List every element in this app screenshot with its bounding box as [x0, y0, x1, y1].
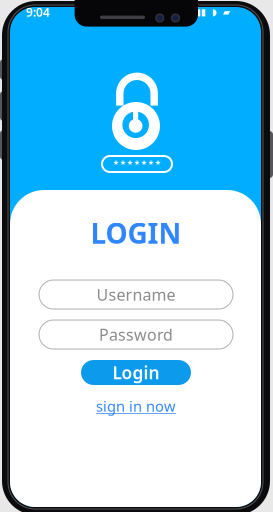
button[interactable]: Login: [81, 360, 191, 385]
staticText: ▮▮▮ ◗ ▰: [191, 7, 230, 17]
staticText: Password: [99, 324, 173, 345]
button[interactable]: Username: [39, 280, 233, 309]
staticText: sign in now: [96, 396, 176, 416]
button[interactable]: Password: [39, 320, 233, 349]
staticText: LOGIN: [90, 214, 181, 252]
staticText: 9:04: [26, 4, 50, 20]
staticText: Login: [112, 361, 159, 384]
staticText: Username: [96, 284, 175, 305]
button[interactable]: sign in now: [91, 398, 181, 414]
staticText: * * * * * * *: [113, 158, 160, 170]
